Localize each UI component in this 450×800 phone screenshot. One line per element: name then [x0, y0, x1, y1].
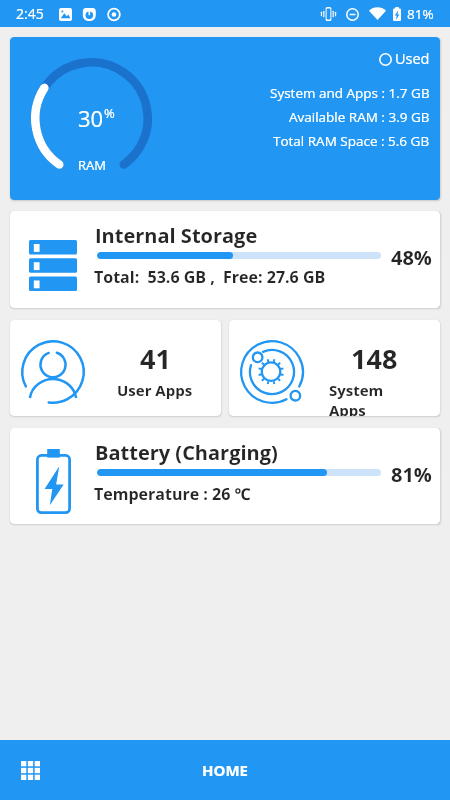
staticText: System and Apps : 1.7 GB [270, 84, 430, 102]
button[interactable]: All apps [8, 748, 52, 792]
button[interactable]: 30 [10, 37, 440, 200]
button[interactable]: Internal Storage [10, 211, 440, 308]
staticText: 41 [140, 340, 171, 377]
button[interactable]: 41 [10, 320, 221, 416]
staticText: User Apps [117, 380, 193, 400]
staticText: 30 [78, 103, 104, 133]
staticText: 81% [391, 461, 432, 488]
staticText: Total: 53.6 GB , Free: 27.6 GB [94, 266, 326, 288]
button[interactable]: 148 [229, 320, 440, 416]
staticText: HOME [202, 760, 248, 780]
staticText: 81% [407, 5, 434, 23]
staticText: Total RAM Space : 5.6 GB [273, 132, 430, 150]
staticText: 2:45 [16, 4, 44, 23]
staticText: Temperature : 26 ℃ [94, 483, 251, 505]
staticText: RAM [78, 156, 106, 174]
staticText: System Apps [329, 380, 419, 416]
staticText: Available RAM : 3.9 GB [289, 108, 430, 126]
staticText: % [104, 104, 115, 122]
staticText: 148 [351, 340, 398, 377]
staticText: 48% [391, 244, 432, 271]
staticText: Battery (Charging) [95, 439, 278, 466]
staticText: Internal Storage [95, 222, 258, 249]
button[interactable]: Battery (Charging) [10, 428, 440, 524]
staticText: Used [395, 49, 430, 69]
button[interactable]: HOME [178, 748, 272, 792]
